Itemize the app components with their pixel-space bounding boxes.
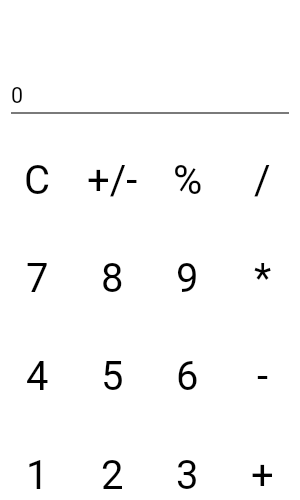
- staticText: C: [24, 157, 51, 204]
- staticText: 2: [101, 452, 124, 499]
- staticText: *: [254, 255, 272, 302]
- button[interactable]: +/-: [75, 131, 150, 229]
- staticText: -: [257, 353, 269, 400]
- button[interactable]: %: [150, 131, 225, 229]
- button[interactable]: 4: [0, 327, 75, 425]
- button[interactable]: 1: [0, 426, 75, 500]
- staticText: 5: [101, 353, 124, 400]
- button[interactable]: 7: [0, 229, 75, 327]
- staticText: 4: [26, 353, 49, 400]
- staticText: /: [254, 157, 271, 204]
- button[interactable]: 6: [150, 327, 225, 425]
- button[interactable]: /: [225, 131, 300, 229]
- button[interactable]: 9: [150, 229, 225, 327]
- staticText: 1: [26, 452, 49, 499]
- button[interactable]: 3: [150, 426, 225, 500]
- staticText: 0: [11, 83, 24, 108]
- button[interactable]: -: [225, 327, 300, 425]
- staticText: 3: [176, 452, 199, 499]
- button[interactable]: 0: [11, 83, 111, 108]
- staticText: 8: [101, 255, 124, 302]
- staticText: +: [251, 452, 274, 499]
- button[interactable]: +: [225, 426, 300, 500]
- staticText: 9: [176, 255, 199, 302]
- button[interactable]: *: [225, 229, 300, 327]
- staticText: 6: [176, 353, 199, 400]
- staticText: 7: [26, 255, 49, 302]
- button[interactable]: C: [0, 131, 75, 229]
- button[interactable]: 2: [75, 426, 150, 500]
- button[interactable]: 5: [75, 327, 150, 425]
- staticText: +/-: [87, 157, 138, 204]
- button[interactable]: 8: [75, 229, 150, 327]
- staticText: %: [173, 157, 203, 204]
